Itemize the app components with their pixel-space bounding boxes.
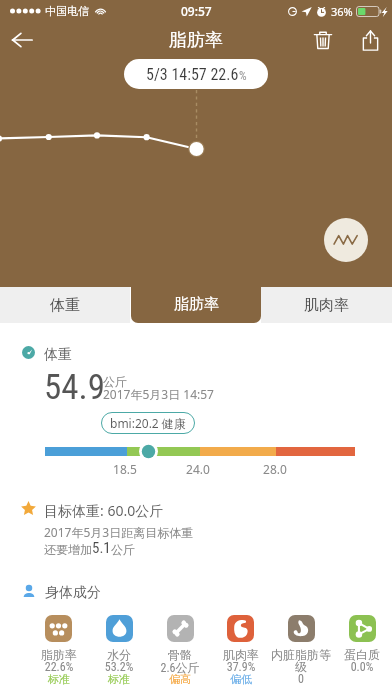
staticText: 脂肪率 — [169, 29, 223, 52]
staticText: 肌肉率 — [304, 296, 349, 315]
button[interactable]: Delete — [301, 20, 345, 60]
staticText: 09:57 — [181, 3, 212, 19]
staticText: 内脏脂肪等级 — [268, 647, 334, 675]
staticText: 5.1 — [92, 539, 111, 557]
staticText: 36% — [331, 4, 353, 19]
button[interactable]: bmi:20.2 健康 — [101, 412, 195, 434]
staticText: 骨骼 — [147, 647, 213, 662]
staticText: 标准 — [26, 672, 92, 686]
button[interactable]: Trend chart — [324, 218, 368, 262]
staticText: 2017年5月3日 14:57 — [103, 386, 214, 402]
button[interactable]: 脂肪率 — [45, 615, 72, 642]
staticText: 水分 — [86, 647, 152, 662]
staticText: 肌肉率 — [208, 647, 274, 662]
staticText: 标准 — [86, 672, 152, 686]
button[interactable]: 肌肉率 — [227, 615, 254, 642]
staticText: 22.6% — [26, 660, 92, 674]
staticText: 公斤 — [111, 542, 135, 557]
staticText: 脂肪率 — [174, 295, 219, 314]
staticText: 53.2% — [86, 660, 152, 674]
button[interactable]: 骨骼 — [167, 615, 194, 642]
staticText: 体重 — [50, 296, 80, 315]
staticText: 18.5 — [113, 461, 137, 477]
staticText: 5/3 14:57 22.6 — [146, 65, 239, 84]
button[interactable]: Share — [348, 20, 392, 60]
staticText: 偏低 — [208, 672, 274, 686]
staticText: 中国电信 — [45, 4, 89, 18]
staticText: 身体成分 — [45, 584, 101, 602]
staticText: 0.0% — [329, 660, 392, 674]
staticText: 28.0 — [263, 461, 287, 477]
staticText: 公斤 — [103, 374, 127, 389]
staticText: 蛋白质 — [329, 647, 392, 662]
staticText: % — [239, 69, 247, 83]
staticText: 目标体重: 60.0公斤 — [44, 501, 164, 520]
staticText: 24.0 — [186, 461, 210, 477]
button[interactable]: 肌肉率 — [261, 287, 392, 323]
button[interactable]: 体重 — [0, 287, 130, 323]
button[interactable]: 内脏脂肪等级 — [288, 615, 315, 642]
button[interactable]: 水分 — [106, 615, 133, 642]
button[interactable]: Back — [0, 20, 44, 60]
staticText: 0 — [268, 672, 334, 686]
staticText: 还要增加 — [44, 542, 92, 557]
staticText: 脂肪率 — [26, 647, 92, 662]
staticText: 2017年5月3日距离目标体重 — [44, 524, 194, 540]
staticText: 2.6公斤 — [147, 660, 213, 675]
staticText: 37.9% — [208, 660, 274, 674]
button[interactable]: 蛋白质 — [349, 615, 376, 642]
staticText: 54.9 — [44, 367, 106, 408]
staticText: 偏高 — [147, 672, 213, 686]
button[interactable]: 脂肪率 — [131, 240, 261, 323]
staticText: bmi:20.2 健康 — [110, 415, 186, 431]
staticText: 体重 — [44, 346, 72, 364]
